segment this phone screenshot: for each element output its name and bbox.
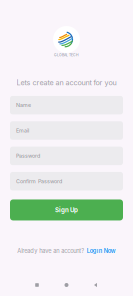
button[interactable]: Password (10, 147, 123, 165)
button[interactable]: Already have an account? (17, 247, 116, 254)
staticText: Confirm Password (16, 178, 62, 184)
button[interactable]: Confirm Password (10, 172, 123, 190)
staticText: Already have an account? (17, 247, 84, 254)
staticText: Email (16, 127, 29, 134)
staticText: GLOBAL TECH (54, 53, 79, 57)
button[interactable]: Email (10, 121, 123, 140)
staticText: Lets create an account for you (16, 78, 116, 87)
staticText: Login Now (87, 247, 116, 254)
staticText: Sign Up (55, 206, 78, 214)
button[interactable]: Recent apps (22, 278, 52, 292)
button[interactable]: Home (52, 278, 81, 292)
button[interactable]: Name (10, 96, 123, 114)
button[interactable]: Sign Up (10, 199, 123, 220)
staticText: Name (16, 102, 31, 108)
staticText: Password (16, 153, 40, 159)
button[interactable]: Back (81, 278, 110, 292)
